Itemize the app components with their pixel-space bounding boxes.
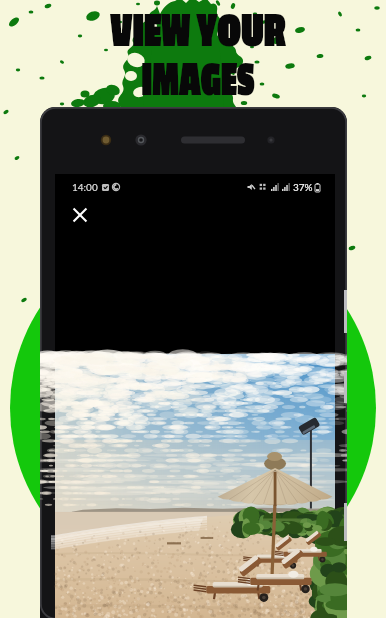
staticText: 37% (293, 181, 313, 193)
staticText: 14:00 (72, 181, 98, 193)
button[interactable]: Close (67, 202, 93, 228)
button[interactable] (55, 354, 335, 618)
staticText: IMAGES (141, 52, 255, 108)
staticText: VIEW YOUR (110, 3, 286, 59)
